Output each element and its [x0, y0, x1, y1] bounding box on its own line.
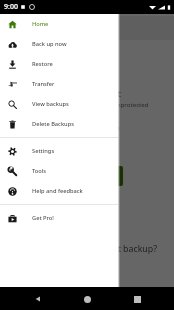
staticText: Delete Backups: [32, 120, 74, 128]
staticText: 9:00: [4, 2, 18, 12]
button[interactable]: Tools: [0, 161, 118, 181]
staticText: Backup: [36, 23, 64, 34]
button[interactable]: Back up now: [0, 34, 118, 54]
staticText: Transfer: [32, 80, 55, 88]
staticText: Your data is not safe yet: [12, 87, 122, 100]
staticText: Restore: [32, 60, 53, 68]
button[interactable]: Home: [0, 14, 118, 34]
button[interactable]: Recent apps: [129, 291, 145, 307]
button[interactable]: View backups: [0, 94, 118, 114]
button[interactable]: Get Pro!: [0, 208, 118, 228]
button[interactable]: Back: [30, 291, 46, 307]
button[interactable]: Delete Backups: [0, 114, 118, 134]
button[interactable]: Restore: [0, 54, 118, 74]
staticText: Get Pro!: [32, 214, 54, 222]
staticText: Home: [32, 20, 49, 28]
button[interactable]: Home: [79, 291, 95, 307]
staticText: Ready to create your first backup?: [17, 243, 158, 255]
button[interactable]: Transfer: [0, 74, 118, 94]
staticText: View backups: [32, 100, 69, 108]
button[interactable]: Help and feedback: [0, 181, 118, 201]
staticText: Your apps and media are currently unprot…: [12, 100, 149, 108]
staticText: Settings: [32, 147, 55, 155]
staticText: Tools: [32, 167, 47, 175]
staticText: BACK UP NOW: [45, 172, 90, 181]
button[interactable]: Settings: [0, 141, 118, 161]
staticText: Back up now: [32, 40, 67, 48]
staticText: 0 backups • 0 scheduled backups for this: [12, 124, 120, 131]
staticText: Help and feedback: [32, 187, 83, 195]
button[interactable]: BACK UP NOW: [12, 166, 123, 186]
